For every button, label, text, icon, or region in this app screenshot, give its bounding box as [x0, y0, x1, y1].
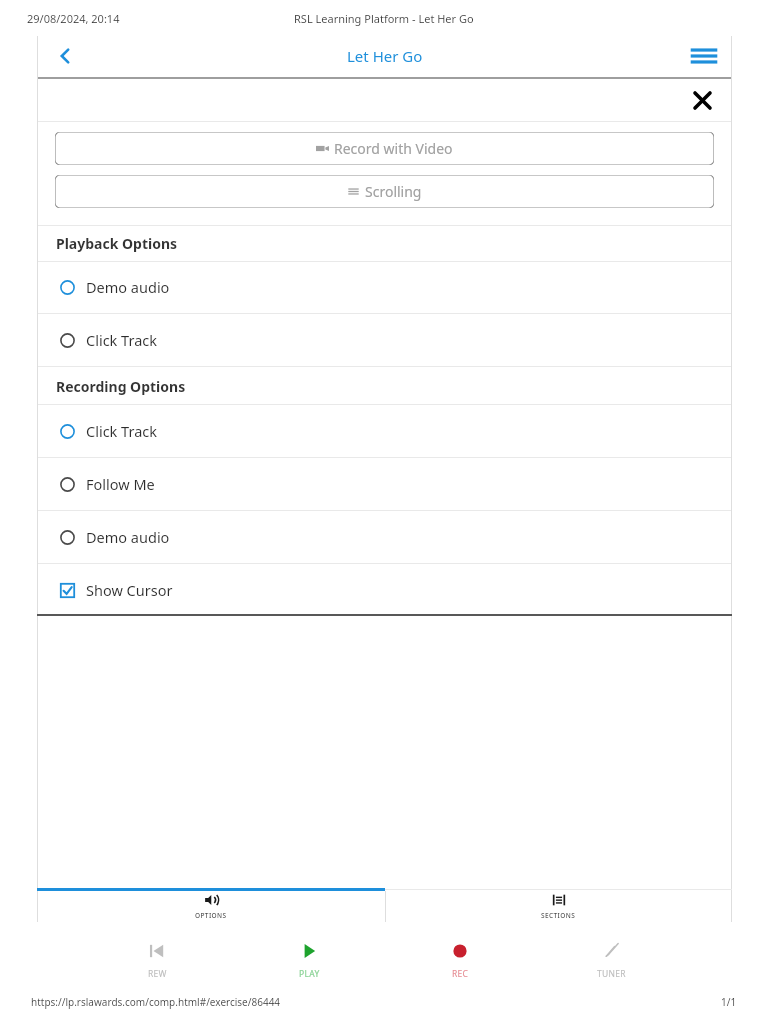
button[interactable]: REC — [420, 932, 500, 988]
staticText: Recording Options — [56, 377, 186, 396]
button[interactable]: TUNER — [571, 932, 651, 988]
staticText: Scrolling — [365, 182, 422, 201]
staticText: RSL Learning Platform - Let Her Go — [294, 11, 474, 26]
button[interactable]: Back — [37, 36, 93, 76]
staticText: https://lp.rslawards.com/comp.html#/exer… — [31, 995, 281, 1009]
staticText: Show Cursor — [86, 580, 173, 600]
staticText: Click Track — [86, 330, 157, 350]
staticText: Click Track — [86, 421, 157, 441]
staticText: SECTIONS — [541, 911, 576, 920]
staticText: Let Her Go — [347, 46, 423, 66]
staticText: PLAY — [299, 968, 320, 980]
button[interactable]: Click Track — [38, 314, 731, 366]
button[interactable]: Record with Video — [55, 132, 714, 165]
button[interactable]: OPTIONS — [37, 891, 385, 922]
staticText: OPTIONS — [195, 911, 227, 920]
button[interactable]: REW — [117, 932, 197, 988]
staticText: REC — [452, 968, 469, 980]
button[interactable]: Demo audio — [38, 261, 731, 313]
button[interactable]: Menu — [676, 36, 732, 76]
staticText: Record with Video — [334, 139, 453, 158]
button[interactable]: Follow Me — [38, 458, 731, 510]
staticText: Demo audio — [86, 527, 170, 547]
staticText: TUNER — [597, 968, 626, 980]
button[interactable]: Scrolling — [55, 175, 714, 208]
button[interactable]: SECTIONS — [385, 891, 732, 922]
staticText: 1/1 — [721, 995, 737, 1009]
staticText: REW — [148, 968, 167, 980]
button[interactable]: Show Cursor — [38, 564, 731, 616]
button[interactable]: Click Track — [38, 405, 731, 457]
button[interactable]: Demo audio — [38, 511, 731, 563]
button[interactable]: Close — [684, 82, 720, 118]
button[interactable]: PLAY — [269, 932, 349, 988]
staticText: Demo audio — [86, 277, 170, 297]
staticText: Follow Me — [86, 474, 155, 494]
staticText: Playback Options — [56, 234, 178, 253]
staticText: 29/08/2024, 20:14 — [27, 11, 120, 26]
